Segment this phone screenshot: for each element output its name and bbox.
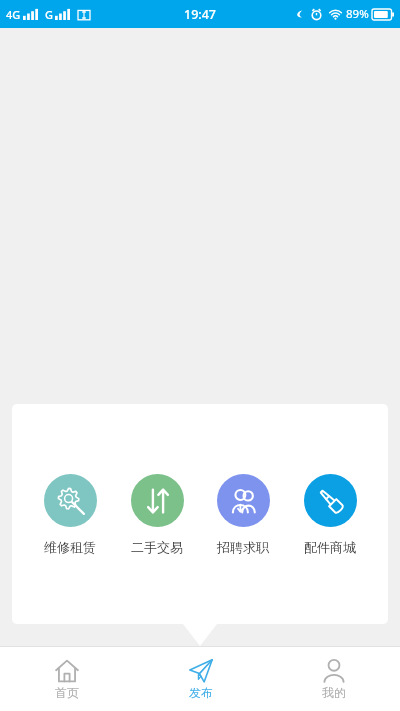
button[interactable]: 招聘求职 [204, 472, 282, 557]
staticText: 招聘求职 [217, 539, 269, 555]
staticText: 89% [346, 6, 369, 22]
button[interactable]: 发布 [134, 647, 267, 711]
staticText: 配件商城 [304, 539, 356, 555]
button[interactable]: 维修租赁 [31, 472, 109, 557]
staticText: 首页 [55, 685, 79, 700]
staticText: 4G [6, 7, 21, 22]
staticText: 维修租赁 [44, 539, 96, 555]
button[interactable]: 配件商城 [291, 472, 369, 557]
staticText: 发布 [189, 685, 213, 700]
staticText: 我的 [322, 685, 346, 700]
staticText: 19:47 [184, 6, 217, 23]
staticText: G [45, 7, 53, 22]
button[interactable]: 首页 [0, 647, 134, 711]
staticText: 二手交易 [131, 539, 183, 555]
button[interactable]: 二手交易 [118, 472, 196, 557]
button[interactable]: 我的 [267, 647, 400, 711]
